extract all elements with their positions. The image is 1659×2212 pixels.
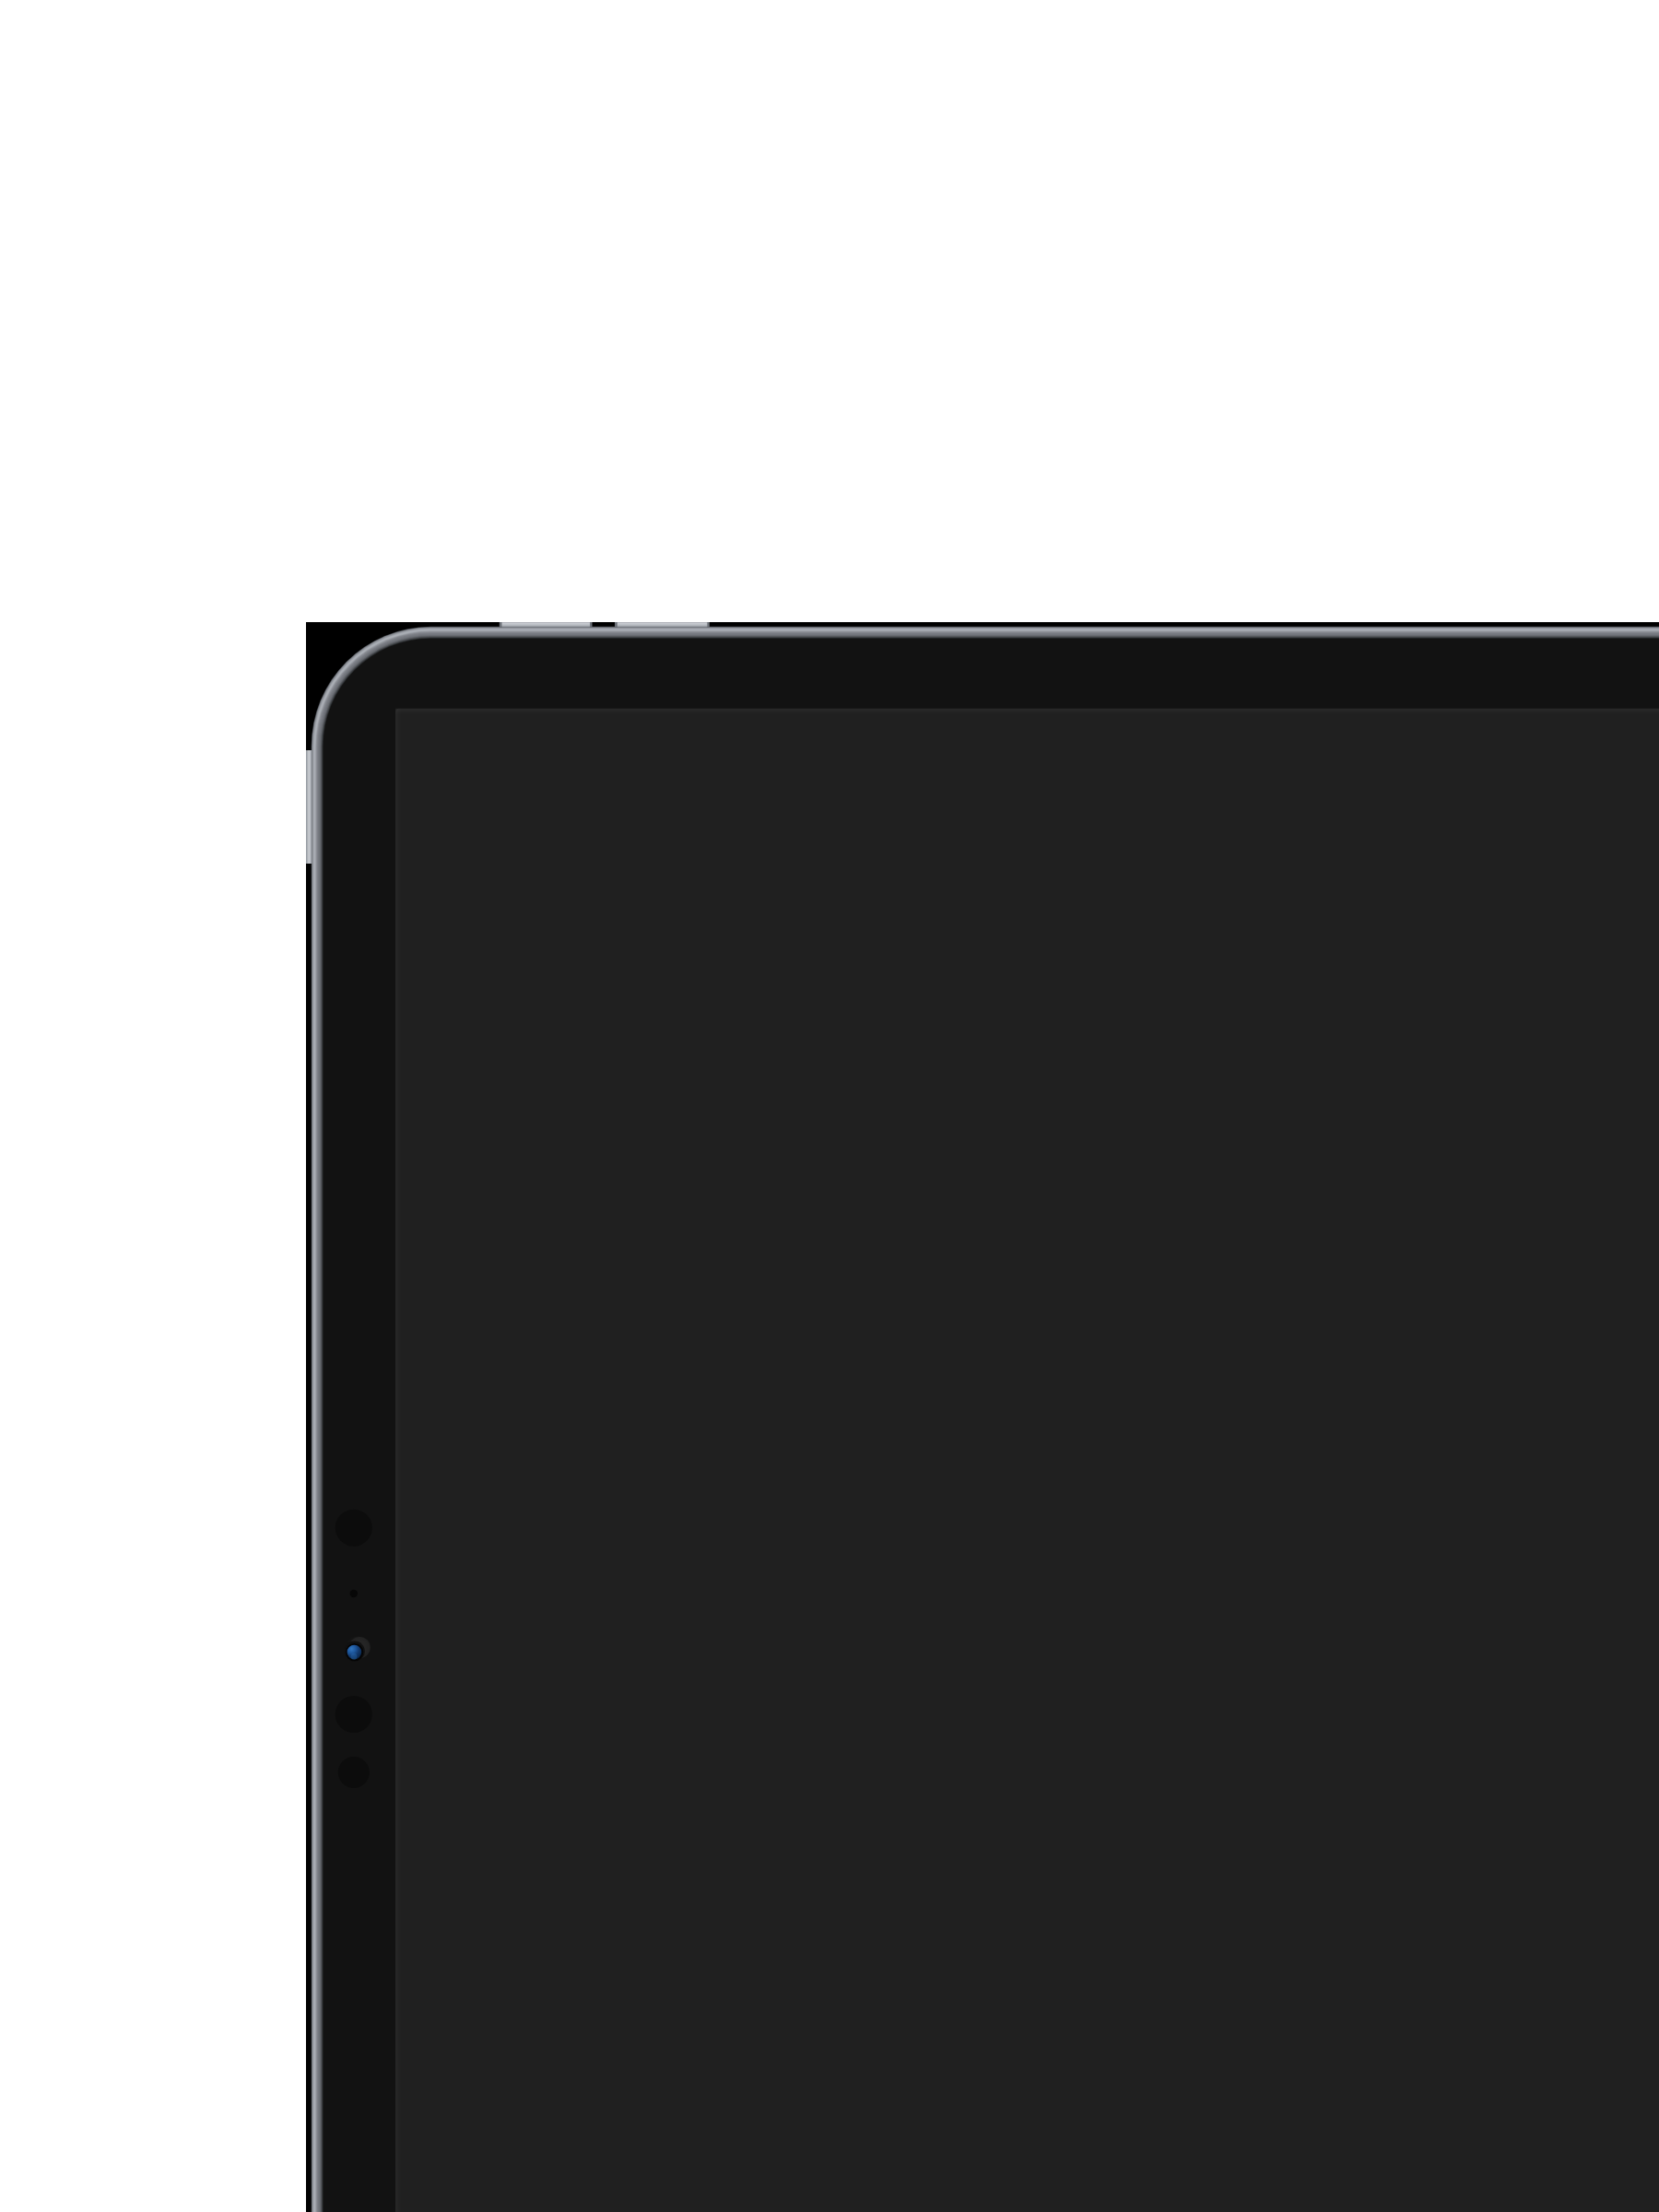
button[interactable]: Power [304, 750, 312, 864]
button[interactable]: Volume up [500, 620, 593, 629]
button[interactable]: Volume down [615, 620, 710, 629]
